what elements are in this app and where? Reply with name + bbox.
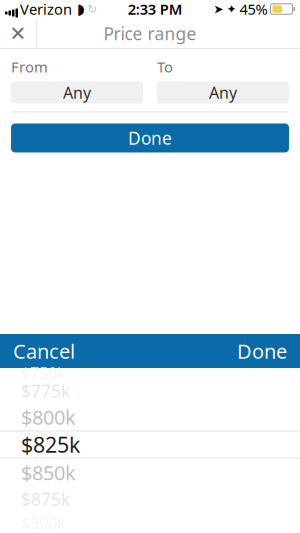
staticText: Any — [63, 82, 91, 103]
staticText: 2:33 PM — [128, 0, 183, 19]
staticText: Done — [237, 338, 287, 364]
staticText: $850k — [21, 459, 76, 486]
staticText: ◗ — [77, 1, 85, 17]
button[interactable]: Cancel — [0, 334, 88, 368]
button[interactable]: Done — [11, 123, 289, 152]
staticText: Verizon — [20, 0, 72, 19]
staticText: Price range — [103, 22, 196, 45]
staticText: Cancel — [13, 338, 75, 364]
staticText: $775k — [21, 379, 70, 402]
staticText: ➤ — [213, 2, 223, 16]
button[interactable]: Close — [0, 18, 36, 49]
staticText: 45% — [239, 0, 267, 19]
staticText: To — [157, 57, 173, 76]
staticText: Any — [209, 82, 237, 103]
staticText: $800k — [21, 404, 76, 430]
button[interactable]: Any — [157, 81, 289, 103]
staticText: ↻ — [87, 2, 97, 16]
button[interactable]: Any — [11, 81, 143, 103]
button[interactable]: Done — [224, 334, 300, 368]
staticText: Done — [128, 126, 172, 149]
staticText: $750k — [21, 362, 66, 384]
staticText: $825k — [21, 430, 80, 459]
staticText: From — [11, 57, 48, 76]
staticText: $875k — [21, 487, 70, 510]
staticText: ✦ — [226, 2, 236, 16]
staticText: ✕ — [9, 22, 26, 45]
staticText: $900k — [21, 512, 66, 533]
